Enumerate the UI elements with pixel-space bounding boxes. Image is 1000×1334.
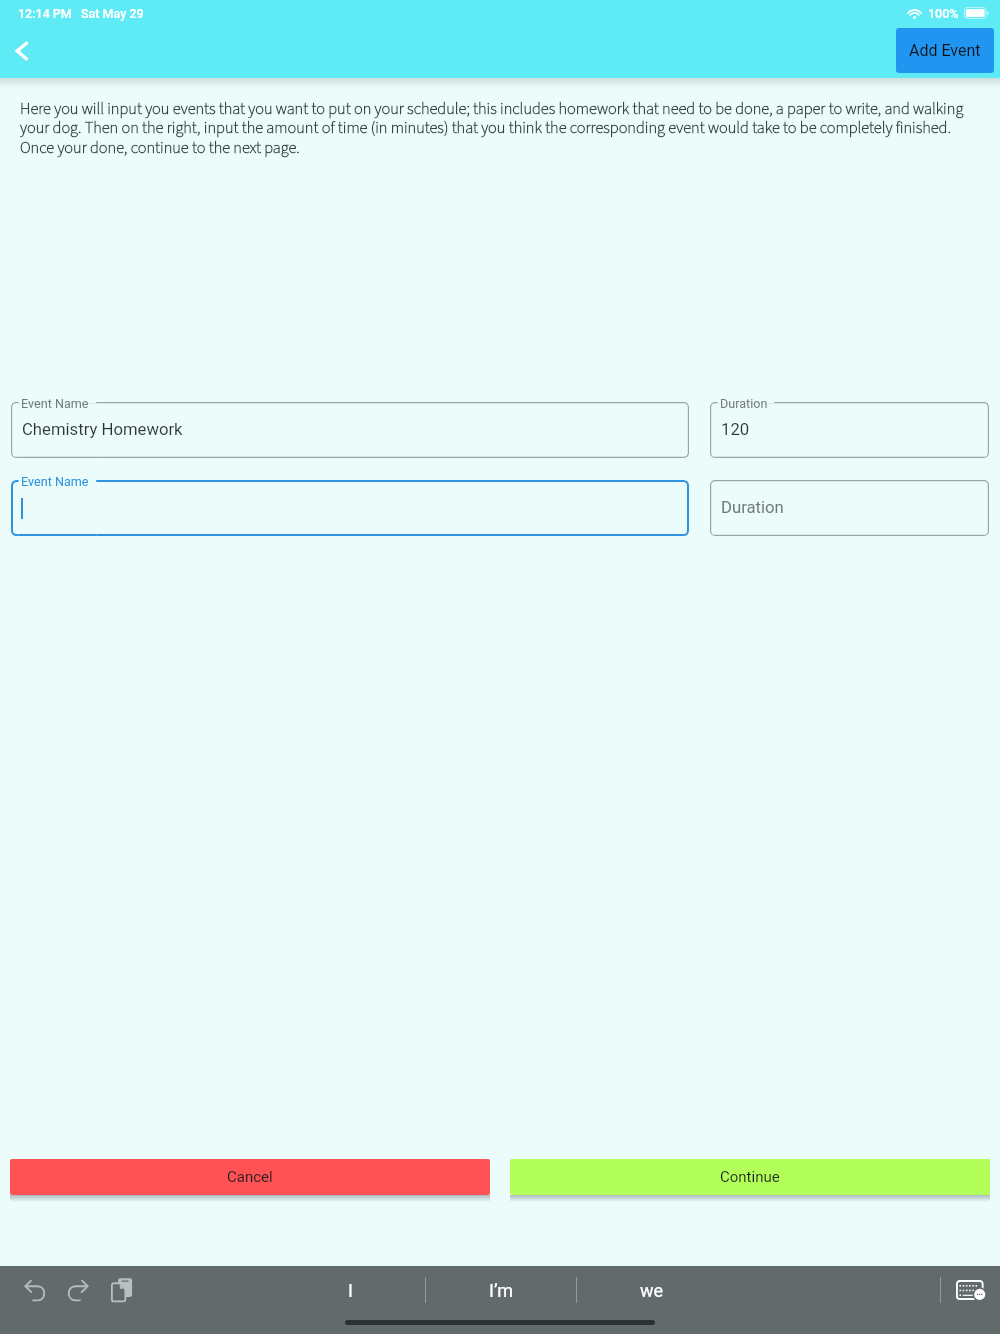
staticText: 120 — [721, 420, 750, 440]
staticText: Cancel — [227, 1168, 273, 1186]
staticText: Duration — [720, 396, 768, 411]
button[interactable]: Undo — [14, 1269, 56, 1311]
button[interactable]: Continue — [510, 1159, 990, 1195]
button[interactable]: Paste — [101, 1269, 143, 1311]
button[interactable]: Event Name — [11, 472, 689, 536]
button[interactable]: Add Event — [896, 28, 994, 73]
staticText: 12:14 PM — [18, 6, 72, 21]
staticText: Here you will input you events that you … — [20, 97, 965, 160]
button[interactable]: Duration — [710, 472, 989, 536]
staticText: Continue — [720, 1168, 780, 1186]
button[interactable]: Duration — [710, 394, 989, 458]
button[interactable]: Event Name — [11, 394, 689, 458]
staticText: 100% — [928, 6, 959, 21]
staticText: Event Name — [21, 474, 89, 489]
button[interactable]: I — [275, 1268, 425, 1312]
staticText: Add Event — [909, 41, 981, 60]
staticText: I’m — [489, 1280, 514, 1301]
button[interactable]: Redo — [57, 1269, 99, 1311]
button[interactable]: we — [577, 1268, 727, 1312]
button[interactable]: Back — [0, 29, 44, 73]
button[interactable]: I’m — [426, 1268, 576, 1312]
staticText: Duration — [721, 498, 784, 518]
staticText: Chemistry Homework — [22, 420, 183, 440]
button[interactable]: Cancel — [10, 1159, 490, 1195]
staticText: Event Name — [21, 396, 89, 411]
staticText: I — [348, 1280, 353, 1301]
staticText: we — [640, 1280, 664, 1301]
button[interactable]: Keyboard options — [950, 1269, 992, 1311]
staticText: Sat May 29 — [81, 6, 144, 21]
